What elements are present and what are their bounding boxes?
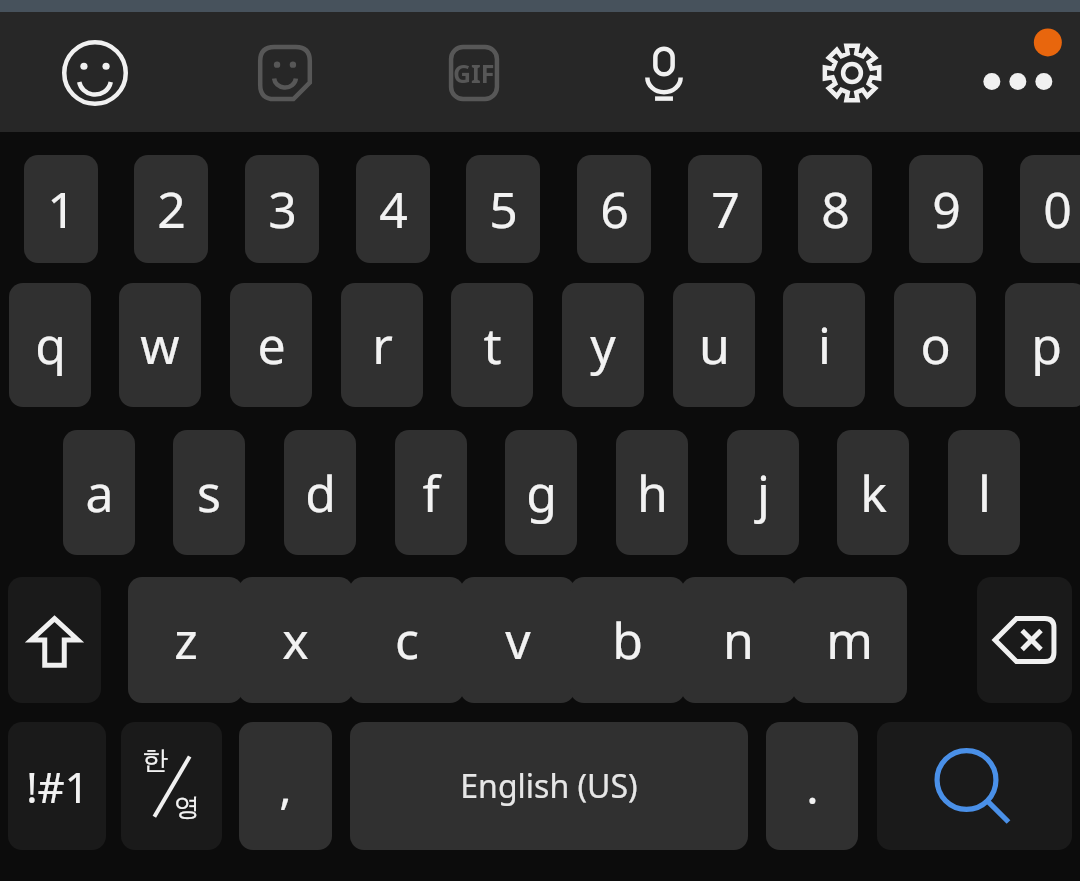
staticText: t bbox=[483, 311, 502, 379]
staticText: d bbox=[305, 459, 336, 527]
staticText: n bbox=[723, 606, 754, 674]
button[interactable]: l bbox=[948, 430, 1020, 555]
button[interactable]: 9 bbox=[909, 155, 983, 263]
staticText: j bbox=[757, 459, 770, 527]
button[interactable]: Shift bbox=[8, 577, 101, 703]
button[interactable]: a bbox=[63, 430, 135, 555]
staticText: r bbox=[372, 311, 393, 379]
staticText: a bbox=[85, 459, 114, 527]
staticText: 1 bbox=[47, 175, 76, 243]
button[interactable]: Korean English toggle bbox=[121, 722, 222, 850]
button[interactable]: 0 bbox=[1020, 155, 1080, 263]
staticText: v bbox=[505, 606, 531, 674]
button[interactable]: p bbox=[1005, 283, 1080, 407]
button[interactable]: 6 bbox=[577, 155, 651, 263]
staticText: b bbox=[612, 606, 643, 674]
button[interactable]: , bbox=[239, 722, 332, 850]
staticText: !#1 bbox=[26, 758, 89, 815]
staticText: 한 bbox=[142, 744, 168, 777]
staticText: 영 bbox=[174, 791, 200, 824]
staticText: , bbox=[279, 755, 292, 818]
button[interactable]: !#1 bbox=[8, 722, 106, 850]
button[interactable]: y bbox=[562, 283, 644, 407]
button[interactable]: u bbox=[673, 283, 755, 407]
staticText: 8 bbox=[821, 175, 850, 243]
button[interactable]: More options bbox=[970, 38, 1062, 108]
staticText: x bbox=[282, 606, 309, 674]
button[interactable]: 2 bbox=[134, 155, 208, 263]
button[interactable]: s bbox=[173, 430, 245, 555]
button[interactable]: x bbox=[238, 577, 353, 703]
button[interactable]: i bbox=[783, 283, 865, 407]
staticText: m bbox=[826, 606, 873, 674]
button[interactable]: z bbox=[128, 577, 243, 703]
button[interactable]: Backspace bbox=[977, 577, 1072, 703]
staticText: q bbox=[35, 311, 66, 379]
staticText: w bbox=[140, 311, 180, 379]
button[interactable]: c bbox=[349, 577, 464, 703]
staticText: 2 bbox=[157, 175, 186, 243]
button[interactable]: Settings bbox=[819, 40, 885, 106]
staticText: 3 bbox=[268, 175, 297, 243]
staticText: 6 bbox=[600, 175, 629, 243]
staticText: e bbox=[257, 311, 286, 379]
button[interactable]: t bbox=[451, 283, 533, 407]
button[interactable]: q bbox=[9, 283, 91, 407]
button[interactable]: Stickers bbox=[254, 42, 316, 104]
button[interactable]: w bbox=[119, 283, 201, 407]
button[interactable]: English (US) bbox=[350, 722, 748, 850]
staticText: s bbox=[197, 459, 221, 527]
button[interactable]: v bbox=[460, 577, 575, 703]
button[interactable]: g bbox=[505, 430, 577, 555]
button[interactable]: GIF bbox=[443, 42, 505, 104]
staticText: g bbox=[526, 459, 557, 527]
button[interactable]: Emoji bbox=[61, 39, 129, 107]
staticText: i bbox=[818, 311, 831, 379]
button[interactable]: d bbox=[284, 430, 356, 555]
button[interactable]: j bbox=[727, 430, 799, 555]
staticText: GIF bbox=[453, 56, 495, 90]
button[interactable]: Voice input bbox=[632, 41, 696, 105]
button[interactable]: 8 bbox=[798, 155, 872, 263]
button[interactable]: n bbox=[681, 577, 796, 703]
staticText: p bbox=[1031, 311, 1062, 379]
button[interactable]: h bbox=[616, 430, 688, 555]
button[interactable]: Search bbox=[877, 722, 1072, 850]
button[interactable]: m bbox=[792, 577, 907, 703]
staticText: 0 bbox=[1043, 175, 1072, 243]
button[interactable]: k bbox=[837, 430, 909, 555]
button[interactable]: b bbox=[570, 577, 685, 703]
staticText: l bbox=[978, 459, 991, 527]
staticText: f bbox=[422, 459, 440, 527]
button[interactable]: r bbox=[341, 283, 423, 407]
staticText: u bbox=[699, 311, 730, 379]
staticText: English (US) bbox=[460, 764, 638, 808]
staticText: z bbox=[174, 606, 198, 674]
staticText: k bbox=[860, 459, 887, 527]
staticText: . bbox=[806, 755, 819, 818]
button[interactable]: 4 bbox=[356, 155, 430, 263]
button[interactable]: . bbox=[766, 722, 858, 850]
staticText: o bbox=[920, 311, 951, 379]
button[interactable]: 1 bbox=[24, 155, 98, 263]
button[interactable]: o bbox=[894, 283, 976, 407]
button[interactable]: 3 bbox=[245, 155, 319, 263]
staticText: 7 bbox=[711, 175, 740, 243]
button[interactable]: f bbox=[395, 430, 467, 555]
staticText: h bbox=[637, 459, 668, 527]
button[interactable]: e bbox=[230, 283, 312, 407]
button[interactable]: 5 bbox=[466, 155, 540, 263]
staticText: 4 bbox=[379, 175, 408, 243]
staticText: c bbox=[395, 606, 419, 674]
staticText: 9 bbox=[932, 175, 961, 243]
staticText: y bbox=[590, 311, 616, 379]
staticText: 5 bbox=[489, 175, 518, 243]
button[interactable]: 7 bbox=[688, 155, 762, 263]
